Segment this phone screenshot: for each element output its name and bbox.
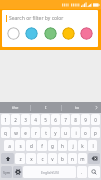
staticText: g: [51, 143, 54, 149]
staticText: w: [14, 130, 18, 136]
button[interactable]: I: [31, 102, 61, 113]
button[interactable]: the: [0, 102, 30, 113]
staticText: 9: [84, 117, 87, 123]
staticText: u: [64, 130, 67, 136]
staticText: I: [45, 105, 47, 111]
button[interactable]: w: [11, 127, 20, 138]
staticText: t: [45, 130, 47, 136]
staticText: Search or filter by color: [9, 15, 64, 22]
staticText: 7: [64, 117, 67, 123]
button[interactable]: Sym: [1, 166, 12, 178]
staticText: m: [80, 156, 85, 162]
button[interactable]: Search or filter by color: [2, 10, 98, 47]
button[interactable]: z: [15, 153, 25, 164]
staticText: n: [71, 156, 74, 162]
staticText: 0: [94, 117, 97, 123]
button[interactable]: u: [61, 127, 70, 138]
button[interactable]: Yellow: [62, 27, 75, 40]
button[interactable]: v: [48, 153, 57, 164]
staticText: f: [41, 143, 43, 149]
staticText: to: [75, 105, 80, 111]
button[interactable]: h: [58, 140, 67, 151]
staticText: y: [54, 130, 57, 136]
button[interactable]: i: [71, 127, 80, 138]
button[interactable]: 4: [31, 114, 40, 125]
button[interactable]: More suggestions: [92, 102, 101, 113]
button[interactable]: Pink: [80, 27, 93, 40]
button[interactable]: 9: [81, 114, 90, 125]
staticText: the: [12, 105, 19, 111]
button[interactable]: 7: [61, 114, 70, 125]
button[interactable]: Blue: [25, 27, 38, 40]
button[interactable]: p: [91, 127, 100, 138]
button[interactable]: s: [15, 140, 25, 151]
staticText: x: [30, 156, 33, 162]
button[interactable]: Emoji and settings: [13, 166, 22, 178]
staticText: b: [61, 156, 64, 162]
staticText: 6: [54, 117, 57, 123]
button[interactable]: 0: [91, 114, 100, 125]
staticText: k: [81, 143, 84, 149]
button[interactable]: .: [77, 166, 87, 178]
button[interactable]: a: [4, 140, 14, 151]
staticText: h: [61, 143, 64, 149]
button[interactable]: m: [78, 153, 87, 164]
staticText: j: [72, 143, 74, 149]
button[interactable]: 6: [51, 114, 60, 125]
staticText: r: [35, 130, 37, 136]
button[interactable]: o: [81, 127, 90, 138]
button[interactable]: c: [37, 153, 47, 164]
button[interactable]: k: [78, 140, 87, 151]
staticText: s: [19, 143, 22, 149]
button[interactable]: 5: [41, 114, 50, 125]
button[interactable]: d: [26, 140, 36, 151]
button[interactable]: 3: [21, 114, 30, 125]
button[interactable]: English(US): [23, 166, 76, 178]
button[interactable]: n: [68, 153, 77, 164]
button[interactable]: Search: [88, 166, 100, 178]
staticText: d: [30, 143, 33, 149]
button[interactable]: q: [1, 127, 10, 138]
staticText: English(US): [41, 170, 59, 175]
staticText: 8: [74, 117, 77, 123]
button[interactable]: y: [51, 127, 60, 138]
staticText: 4: [34, 117, 37, 123]
button[interactable]: 2: [11, 114, 20, 125]
staticText: a: [8, 143, 11, 149]
button[interactable]: White: [7, 27, 20, 40]
button[interactable]: g: [48, 140, 57, 151]
staticText: e: [24, 130, 27, 136]
button[interactable]: Shift: [1, 153, 14, 164]
button[interactable]: e: [21, 127, 30, 138]
button[interactable]: t: [41, 127, 50, 138]
button[interactable]: 1: [1, 114, 10, 125]
staticText: Sym: [3, 170, 11, 175]
staticText: .: [81, 169, 83, 175]
staticText: c: [41, 156, 44, 162]
button[interactable]: f: [37, 140, 47, 151]
staticText: l: [92, 143, 94, 149]
staticText: o: [84, 130, 87, 136]
staticText: 5: [44, 117, 47, 123]
button[interactable]: r: [31, 127, 40, 138]
button[interactable]: 8: [71, 114, 80, 125]
staticText: i: [75, 130, 77, 136]
staticText: 3: [24, 117, 27, 123]
button[interactable]: Backspace: [88, 153, 100, 164]
button[interactable]: x: [26, 153, 36, 164]
button[interactable]: l: [88, 140, 97, 151]
staticText: 1: [4, 117, 7, 123]
button[interactable]: b: [58, 153, 67, 164]
staticText: p: [94, 130, 97, 136]
staticText: v: [51, 156, 54, 162]
staticText: 2: [14, 117, 17, 123]
staticText: q: [4, 130, 7, 136]
staticText: z: [19, 156, 22, 162]
button[interactable]: to: [62, 102, 92, 113]
button[interactable]: Green: [44, 27, 57, 40]
button[interactable]: j: [68, 140, 77, 151]
